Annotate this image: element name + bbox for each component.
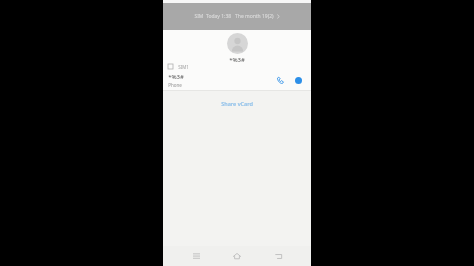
button[interactable]: Contact photo <box>227 33 248 54</box>
button[interactable]: Message <box>292 74 305 87</box>
button[interactable]: *%3# <box>163 71 311 90</box>
button[interactable]: Back <box>270 248 286 264</box>
staticText: SIM Today 1:38 The month 19(2) <box>194 13 274 20</box>
button[interactable]: Share vCard <box>163 91 311 115</box>
staticText: SIM1 <box>178 64 189 70</box>
staticText: *%3# <box>229 56 245 62</box>
button[interactable]: Recent apps <box>188 248 204 264</box>
staticText: Share vCard <box>221 100 253 107</box>
button[interactable]: Call <box>274 74 287 87</box>
staticText: Phone <box>168 82 182 88</box>
staticText: *%3# <box>168 73 184 81</box>
button[interactable]: Home <box>229 248 245 264</box>
